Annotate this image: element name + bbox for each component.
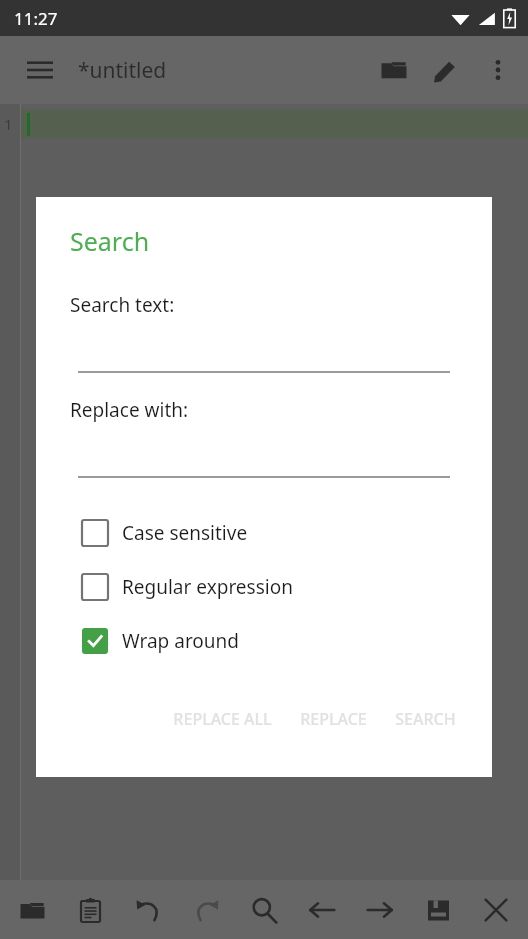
button[interactable]: Wrap around	[36, 614, 492, 668]
button[interactable]: Case sensitive	[36, 506, 492, 560]
staticText: Search	[70, 224, 150, 258]
staticText: 1	[4, 114, 13, 134]
button[interactable]: Close	[470, 884, 522, 936]
button[interactable]: Paste	[64, 884, 116, 936]
staticText: REPLACE	[300, 708, 367, 730]
button[interactable]: SEARCH	[381, 698, 470, 740]
button[interactable]: REPLACE ALL	[159, 698, 286, 740]
button[interactable]: Open	[6, 884, 58, 936]
staticText: Wrap around	[122, 628, 240, 654]
button[interactable]: REPLACE	[286, 698, 381, 740]
button[interactable]: Open file	[368, 44, 420, 96]
button[interactable]: Save	[412, 884, 464, 936]
button[interactable]: More options	[472, 44, 524, 96]
staticText: *untitled	[78, 56, 167, 85]
button[interactable]: Redo	[180, 884, 232, 936]
staticText: REPLACE ALL	[173, 708, 272, 730]
button[interactable]: Undo	[122, 884, 174, 936]
staticText: Search text:	[70, 292, 175, 318]
button[interactable]: Search	[238, 884, 290, 936]
staticText: Replace with:	[70, 397, 189, 423]
button[interactable]: Forward	[354, 884, 406, 936]
staticText: 11:27	[14, 7, 58, 30]
staticText: Case sensitive	[122, 520, 248, 546]
button[interactable]: Regular expression	[36, 560, 492, 614]
button[interactable]: Back	[296, 884, 348, 936]
staticText: SEARCH	[395, 708, 456, 730]
button[interactable]: Edit	[420, 44, 472, 96]
staticText: Regular expression	[122, 574, 293, 600]
button[interactable]: Menu	[14, 44, 66, 96]
